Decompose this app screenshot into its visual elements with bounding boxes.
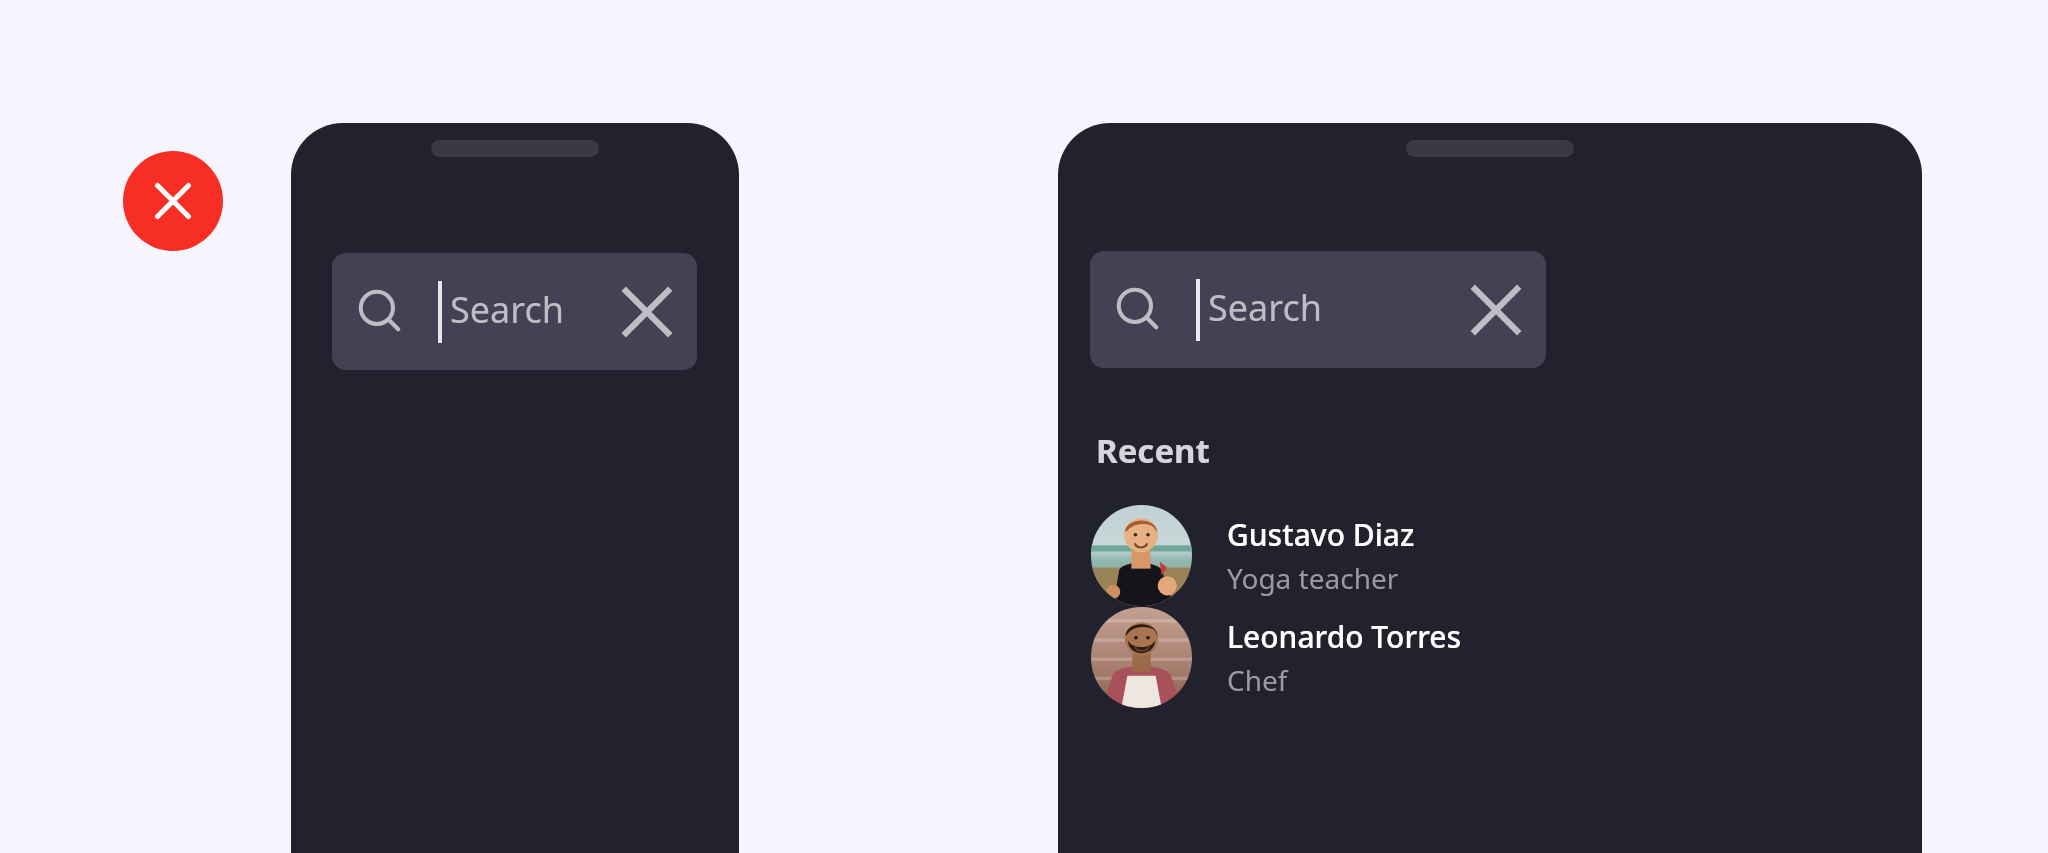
staticText: Leonardo Torres <box>1227 616 1462 657</box>
button[interactable]: Leonardo Torres <box>1078 606 1902 708</box>
button[interactable]: Search <box>332 253 697 370</box>
button[interactable]: Incorrect example <box>123 151 223 251</box>
button[interactable]: Gustavo Diaz <box>1078 504 1902 606</box>
staticText: Search <box>450 285 564 334</box>
staticText: Recent <box>1096 428 1210 473</box>
staticText: Search <box>1208 283 1322 332</box>
button[interactable]: Clear search <box>615 280 679 344</box>
other: Search <box>1112 284 1164 336</box>
button[interactable]: Clear search <box>1464 278 1528 342</box>
other: Search <box>354 286 406 338</box>
staticText: Gustavo Diaz <box>1227 514 1415 555</box>
staticText: Yoga teacher <box>1227 559 1399 597</box>
button[interactable]: Search <box>1090 251 1546 368</box>
staticText: Chef <box>1227 661 1288 699</box>
